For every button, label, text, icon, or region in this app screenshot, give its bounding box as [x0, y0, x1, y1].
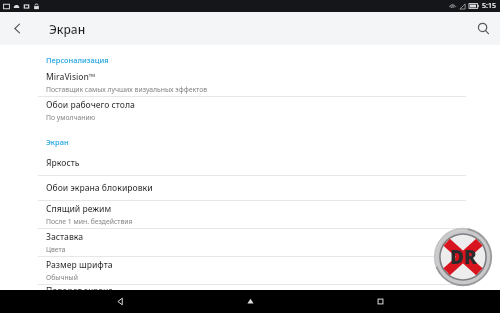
staticText: MiraVision™: [46, 71, 96, 83]
staticText: Спящий режим: [46, 203, 112, 215]
button[interactable]: Заставка: [0, 229, 500, 256]
button[interactable]: Home: [230, 290, 270, 313]
button[interactable]: Обои рабочего стола: [0, 97, 500, 124]
staticText: Яркость: [46, 157, 80, 169]
button[interactable]: Поворот экрана: [0, 285, 500, 290]
staticText: Персонализация: [46, 55, 109, 65]
staticText: Поставщик самых лучших визуальных эффект…: [46, 85, 208, 94]
staticText: Обычный: [46, 273, 78, 282]
staticText: Размер шрифта: [46, 259, 113, 271]
staticText: После 1 мин. бездействия: [46, 217, 133, 226]
staticText: 5:15: [482, 1, 496, 11]
button[interactable]: Back: [0, 12, 34, 45]
staticText: Заставка: [46, 231, 84, 243]
staticText: Обои рабочего стола: [46, 99, 135, 111]
button[interactable]: Спящий режим: [0, 201, 500, 228]
button[interactable]: Размер шрифта: [0, 257, 500, 284]
staticText: Экран: [46, 137, 69, 147]
button[interactable]: Search: [466, 12, 500, 45]
staticText: Поворот экрана: [46, 285, 114, 290]
button[interactable]: Яркость: [0, 151, 500, 175]
staticText: Обои экрана блокировки: [46, 182, 153, 194]
staticText: По умолчанию: [46, 113, 96, 122]
button[interactable]: MiraVision™: [0, 69, 500, 96]
button[interactable]: Обои экрана блокировки: [0, 176, 500, 200]
staticText: DR: [450, 244, 477, 270]
button[interactable]: Recents: [360, 290, 400, 313]
button[interactable]: Back: [100, 290, 140, 313]
staticText: Экран: [49, 21, 86, 37]
staticText: Цвета: [46, 245, 66, 254]
